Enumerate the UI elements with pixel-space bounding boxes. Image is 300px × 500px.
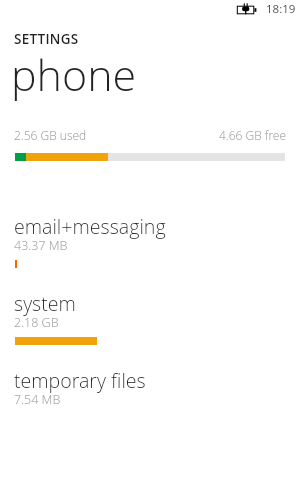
staticText: SETTINGS: [14, 30, 79, 48]
staticText: email+messaging: [14, 213, 166, 240]
button[interactable]: system: [0, 290, 300, 360]
staticText: 4.66 GB free: [15, 127, 286, 143]
button[interactable]: email+messaging: [0, 213, 300, 283]
button[interactable]: temporary files: [0, 367, 300, 437]
staticText: 2.56 GB used: [14, 127, 87, 143]
staticText: system: [14, 290, 76, 317]
staticText: 43.37 MB: [14, 237, 68, 254]
staticText: 18:19: [266, 1, 296, 17]
staticText: temporary files: [14, 367, 146, 394]
staticText: phone: [11, 45, 137, 104]
staticText: 2.18 GB: [14, 314, 59, 331]
other: Battery charging: [232, 0, 262, 20]
staticText: 7.54 MB: [14, 391, 61, 408]
